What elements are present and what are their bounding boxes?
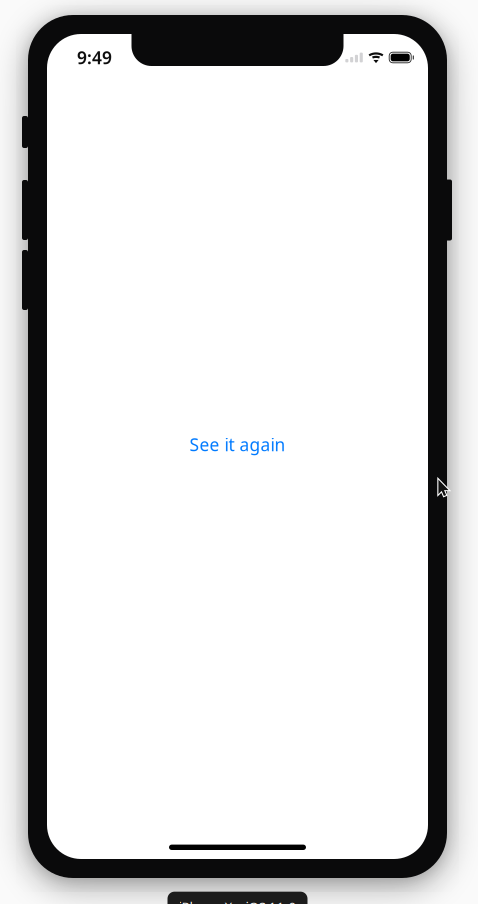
staticText: See it again [189,433,285,456]
staticText: iPhone X – iOS 11.0 [178,898,296,904]
staticText: 9:49 [77,46,112,69]
button[interactable]: See it again [179,427,295,462]
